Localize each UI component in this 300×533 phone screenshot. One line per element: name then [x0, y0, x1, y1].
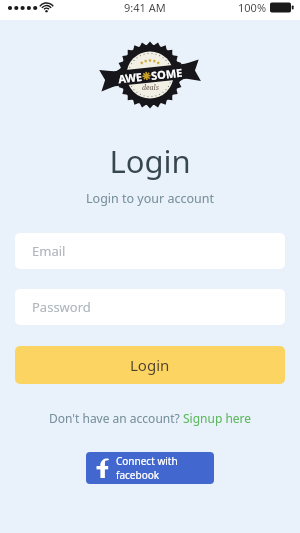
staticText: Login: [0, 140, 300, 182]
staticText: 9:41 AM: [124, 0, 166, 15]
button[interactable]: Login: [15, 346, 285, 384]
button[interactable]: Password: [15, 289, 285, 325]
button[interactable]: Signup here: [183, 410, 252, 426]
staticText: SOME: [150, 65, 184, 83]
staticText: Connect with facebook: [116, 454, 214, 482]
button[interactable]: Connect with facebook: [86, 452, 214, 484]
staticText: Password: [32, 298, 91, 316]
button[interactable]: Email: [15, 233, 285, 269]
staticText: AWE: [117, 69, 143, 86]
staticText: deals: [142, 83, 159, 93]
staticText: 100%: [238, 0, 267, 15]
other: Awesome Deals logo: [100, 40, 200, 110]
staticText: Email: [32, 242, 66, 260]
staticText: Login to your account: [0, 190, 300, 207]
staticText: Signup here: [183, 410, 252, 426]
staticText: Login: [130, 355, 170, 375]
staticText: Don't have an account?: [49, 410, 183, 426]
